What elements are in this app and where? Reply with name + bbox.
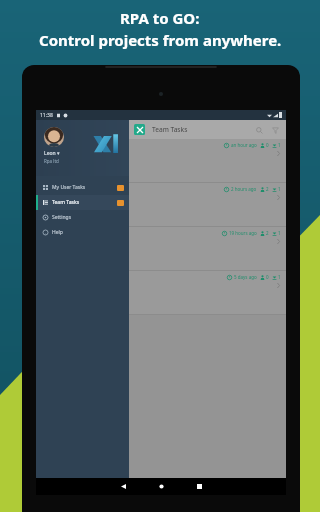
button[interactable]: 5 days ago (129, 271, 286, 315)
button[interactable]: Team Tasks (36, 195, 129, 210)
staticText: RPA to GO: (120, 8, 200, 28)
button[interactable]: an hour ago (129, 139, 286, 183)
staticText: Help (52, 229, 63, 236)
button[interactable]: My User Tasks (36, 180, 129, 195)
staticText: 2 (266, 186, 269, 192)
staticText: 1 (278, 230, 281, 236)
staticText: Leon ▾ (44, 150, 60, 157)
button[interactable]: Help (36, 225, 129, 240)
staticText: Rpa ltd (44, 158, 59, 164)
staticText: Control projects from anywhere. (39, 30, 282, 50)
staticText: 1 (278, 274, 281, 280)
button[interactable]: Close (134, 124, 145, 135)
staticText: 11:38 (40, 112, 53, 119)
staticText: Settings (52, 214, 72, 221)
staticText: 19 hours ago (229, 230, 257, 236)
button[interactable]: Filter (269, 124, 281, 136)
button[interactable]: Home (149, 478, 173, 495)
staticText: 1 (278, 186, 281, 192)
button[interactable]: Settings (36, 210, 129, 225)
button[interactable]: 2 hours ago (129, 183, 286, 227)
staticText: 0 (266, 274, 269, 280)
staticText: Team Tasks (52, 199, 80, 206)
button[interactable]: Back (111, 478, 135, 495)
staticText: 1 (278, 142, 281, 148)
staticText: 2 (266, 230, 269, 236)
staticText: 5 days ago (234, 274, 257, 280)
button[interactable]: Recents (187, 478, 211, 495)
staticText: 2 hours ago (231, 186, 257, 192)
button[interactable]: 19 hours ago (129, 227, 286, 271)
button[interactable]: Search (253, 124, 265, 136)
staticText: Team Tasks (152, 125, 188, 134)
staticText: 0 (266, 142, 269, 148)
staticText: an hour ago (231, 142, 257, 148)
staticText: My User Tasks (52, 184, 86, 191)
